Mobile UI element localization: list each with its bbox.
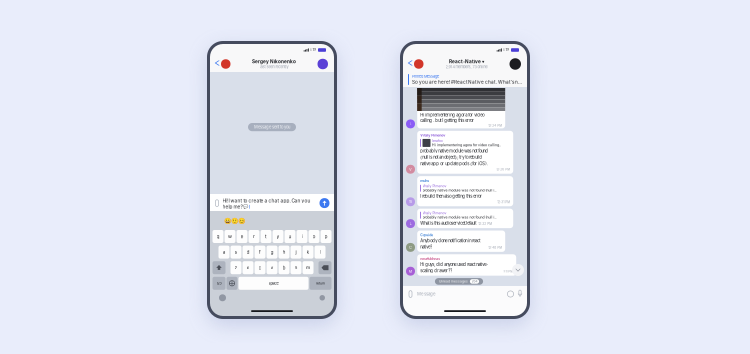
button[interactable]: Shift — [212, 261, 225, 274]
staticText: C — [409, 245, 412, 250]
button[interactable]: Group info — [509, 58, 521, 70]
staticText: return — [316, 281, 325, 285]
button[interactable]: l — [314, 246, 325, 259]
staticText: LTE — [310, 48, 316, 52]
staticText: r — [253, 234, 255, 239]
button[interactable]: Scroll to bottom — [512, 264, 524, 276]
staticText: lerafox — [432, 139, 443, 143]
staticText: Hi! I want to create a chat app. Can you — [222, 198, 310, 203]
staticText: 12:32 PM — [478, 222, 492, 226]
staticText: q — [216, 234, 219, 239]
button[interactable]: Switch keyboard — [226, 277, 237, 290]
staticText: p — [324, 234, 327, 239]
staticText: help me? — [222, 204, 242, 210]
staticText: x — [246, 265, 249, 271]
staticText: LTE — [503, 48, 509, 52]
button[interactable]: s — [230, 246, 241, 259]
button[interactable]: g — [266, 246, 277, 259]
button[interactable]: d — [242, 246, 253, 259]
button[interactable]: space — [238, 277, 308, 290]
staticText: Unread messages — [439, 279, 468, 283]
staticText: So you are here! #ReactNative chat. What… — [412, 79, 522, 85]
staticText: o — [312, 234, 315, 239]
staticText: Vitaly Pimenov — [423, 211, 447, 215]
staticText: Anybody done notification in react — [420, 238, 480, 243]
button[interactable]: k — [302, 246, 313, 259]
staticText: Hi implementering agora for video callin… — [432, 143, 501, 147]
staticText: L — [409, 121, 411, 126]
staticText: scaling drawer?? — [420, 268, 452, 273]
staticText: probably native module was not found (nu… — [423, 215, 497, 219]
button[interactable]: h — [278, 246, 289, 259]
staticText: 123 — [216, 281, 221, 285]
button[interactable]: p — [320, 230, 331, 243]
staticText: v — [270, 265, 273, 271]
staticText: a — [222, 249, 225, 255]
staticText: y — [276, 234, 279, 239]
button[interactable]: r — [248, 230, 259, 243]
button[interactable]: Stickers — [507, 290, 514, 297]
staticText: Message — [417, 291, 436, 297]
button[interactable]: Send — [319, 198, 329, 210]
button[interactable]: c — [254, 261, 265, 274]
staticText: M — [408, 269, 412, 274]
button[interactable]: n — [290, 261, 301, 274]
staticText: 😀🙂😊 — [224, 217, 245, 224]
button[interactable]: m — [302, 261, 313, 274]
button[interactable]: Record voice message — [518, 290, 522, 298]
staticText: 12:26 PM — [496, 168, 510, 171]
button[interactable]: y — [272, 230, 283, 243]
button[interactable]: j — [290, 246, 301, 259]
staticText: Vitaly Pimenov — [423, 184, 447, 188]
staticText: e — [240, 234, 243, 239]
button[interactable]: Back — [216, 59, 230, 69]
staticText: m — [306, 265, 310, 271]
staticText: Pinned Message — [412, 74, 439, 79]
button[interactable]: z — [230, 261, 241, 274]
staticText: calling . but I getting this error — [420, 118, 474, 123]
button[interactable]: 123 — [212, 277, 225, 290]
staticText: h — [282, 249, 285, 255]
button[interactable]: t — [260, 230, 271, 243]
staticText: Sergey Nikonenko — [252, 59, 296, 64]
button[interactable]: a — [218, 246, 229, 259]
staticText: Vitaly Pimenov — [420, 133, 445, 137]
staticText: native app or update pods (for iOS). — [420, 161, 488, 166]
button[interactable]: Back — [409, 59, 423, 69]
button[interactable]: e — [236, 230, 247, 243]
button[interactable]: Delete — [318, 261, 331, 274]
button[interactable]: w — [224, 230, 235, 243]
staticText: 2,914 members, 73 online — [445, 64, 487, 69]
button[interactable]: i — [296, 230, 307, 243]
staticText: space — [268, 281, 278, 285]
button[interactable]: u — [284, 230, 295, 243]
staticText: d — [246, 249, 249, 255]
staticText: Crpside — [420, 233, 433, 237]
staticText: b — [282, 265, 285, 271]
button[interactable]: b — [278, 261, 289, 274]
button[interactable]: q — [212, 230, 223, 243]
staticText: Hi guys, did anyone used react native- — [420, 262, 488, 267]
staticText: 1:11 PM — [503, 270, 513, 273]
staticText: probably native module was not found (nu… — [423, 188, 497, 192]
staticText: c — [258, 265, 261, 271]
button[interactable]: return — [309, 277, 331, 290]
staticText: neurfubhnas — [420, 257, 440, 261]
staticText: k — [306, 249, 309, 255]
staticText: 12:48 PM — [488, 246, 502, 249]
staticText: n — [294, 265, 297, 271]
button[interactable]: Attach — [214, 199, 219, 210]
button[interactable]: Profile — [317, 59, 328, 69]
staticText: L — [409, 221, 411, 226]
staticText: I rebuild then also getting this error — [420, 194, 482, 199]
button[interactable]: x — [242, 261, 253, 274]
staticText: t — [265, 234, 267, 239]
button[interactable]: f — [254, 246, 265, 259]
staticText: What is this audioserviceDefault — [420, 221, 476, 226]
button[interactable]: o — [308, 230, 319, 243]
button[interactable]: Attach — [408, 290, 413, 298]
staticText: Message sent to you — [254, 125, 290, 130]
staticText: z — [234, 265, 237, 271]
staticText: f — [259, 249, 261, 255]
button[interactable]: v — [266, 261, 277, 274]
